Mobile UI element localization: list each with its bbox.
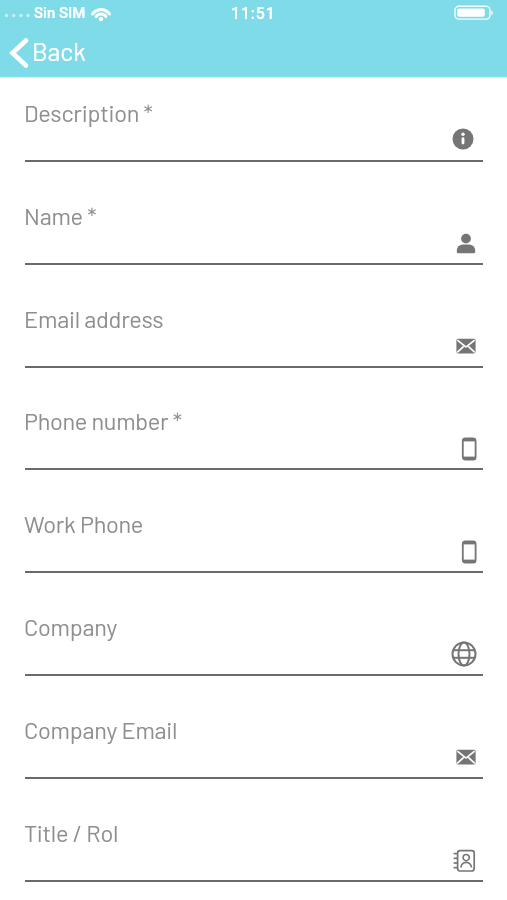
staticText: Title / Rol — [24, 818, 119, 846]
button[interactable]: Description * — [0, 75, 507, 170]
staticText: Phone number * — [24, 406, 182, 434]
button[interactable]: Work Phone — [0, 486, 507, 581]
staticText: Email address — [24, 304, 164, 332]
button[interactable]: Email address — [0, 281, 507, 376]
staticText: Work Phone — [24, 509, 144, 537]
staticText: Sin SIM — [34, 4, 86, 22]
button[interactable]: Phone number * — [0, 383, 507, 478]
staticText: 11:51 — [231, 4, 276, 23]
button[interactable]: Name * — [0, 178, 507, 273]
staticText: Company Email — [24, 715, 178, 743]
staticText: Description * — [24, 98, 153, 126]
staticText: Back — [32, 36, 86, 66]
button[interactable]: Company Email — [0, 692, 507, 787]
button[interactable]: Company — [0, 589, 507, 684]
staticText: Name * — [24, 201, 97, 229]
button[interactable]: Back — [0, 30, 120, 77]
staticText: Company — [24, 612, 118, 640]
button[interactable]: Title / Rol — [0, 795, 507, 890]
